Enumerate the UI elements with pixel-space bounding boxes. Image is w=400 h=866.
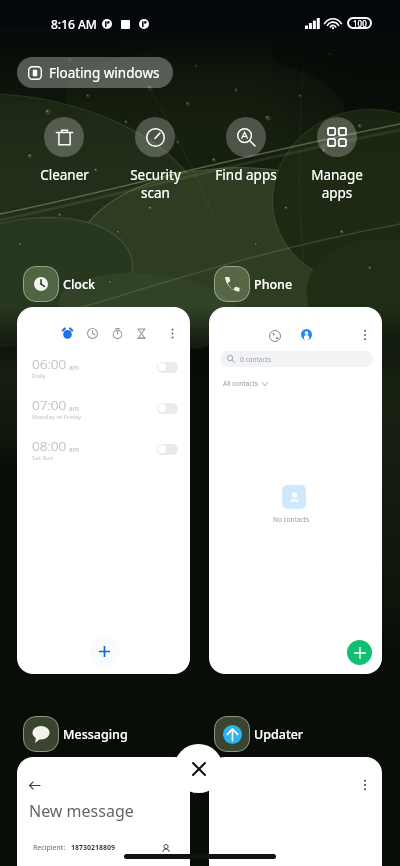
button[interactable]: Security scan [110,117,200,201]
staticText: am [69,404,79,413]
staticText: am [69,445,79,454]
button[interactable]: Back [17,757,190,866]
staticText: 06:00 [32,355,67,373]
button[interactable]: Pick contact [157,840,175,858]
button[interactable]: 06:00 [17,352,190,386]
button[interactable]: Messaging [23,716,128,752]
button[interactable]: Phone [214,266,293,302]
staticText: 0 contacts [240,355,272,364]
button[interactable]: More options [161,322,183,344]
button[interactable]: Alarm toggle [157,362,178,373]
staticText: New message [29,800,134,822]
staticText: 07:00 [32,396,67,414]
staticText: Daily [32,372,46,380]
button[interactable]: Stopwatch [106,322,128,344]
staticText: 08:00 [32,437,67,455]
button[interactable]: World clock [81,322,103,344]
button[interactable]: Alarm toggle [157,444,178,455]
staticText: Phone [254,276,293,293]
staticText: Monday to Friday [32,413,82,421]
staticText: 18730218809 [71,843,116,853]
button[interactable]: Back [22,773,46,797]
button[interactable]: Find apps [201,117,291,201]
staticText: Sat Sun [32,454,54,462]
button[interactable]: More options [209,757,382,866]
staticText: Recipient: [33,843,66,853]
staticText: Updater [254,726,304,743]
button[interactable]: Add alarm [89,636,120,667]
button[interactable]: Manage apps [292,117,382,201]
button[interactable]: More options [353,773,377,797]
button[interactable]: Alarm [56,322,78,344]
button[interactable]: Updater [214,716,304,752]
staticText: Messaging [63,726,128,743]
staticText: Manage apps [311,166,363,201]
staticText: Cleaner [40,166,89,184]
staticText: All contacts [223,379,258,388]
staticText: No contacts [273,515,310,524]
button[interactable]: Cleaner [19,117,109,201]
staticText: Floating windows [49,64,160,82]
button[interactable]: Floating windows [17,57,173,88]
button[interactable]: Clock [23,266,96,302]
staticText: Security scan [130,166,181,201]
button[interactable]: Recents [209,307,382,674]
staticText: 8:16 AM [51,16,97,32]
staticText: Find apps [215,166,277,184]
staticText: Clock [63,276,96,293]
button[interactable]: Recents [261,322,288,349]
staticText: am [69,363,79,372]
button[interactable]: 0 contacts [220,351,373,367]
button[interactable]: 08:00 [17,434,190,468]
button[interactable]: Contacts [296,324,317,345]
button[interactable]: Add contact [347,640,372,665]
button[interactable]: Alarm toggle [157,403,178,414]
button[interactable]: 07:00 [17,393,190,427]
staticText: 100 [353,18,367,29]
button[interactable]: Timer [130,322,152,344]
button[interactable]: Close all [174,744,223,793]
button[interactable]: More options [352,322,377,347]
button[interactable]: Alarm [17,307,190,674]
